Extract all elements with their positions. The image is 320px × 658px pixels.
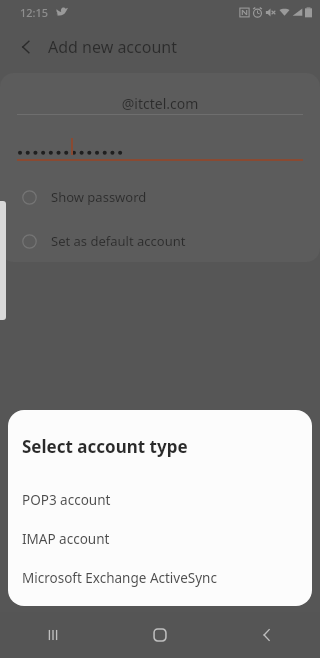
staticText: @itctel.com: [0, 94, 320, 113]
button[interactable]: POP3 account: [8, 480, 312, 519]
staticText: Set as default account: [51, 232, 186, 250]
button[interactable]: Home: [106, 612, 213, 658]
button[interactable]: Microsoft Exchange ActiveSync: [8, 558, 312, 597]
staticText: Select account type: [22, 435, 188, 458]
staticText: POP3 account: [22, 491, 111, 509]
button[interactable]: Set as default account: [0, 224, 320, 258]
staticText: Microsoft Exchange ActiveSync: [22, 569, 217, 587]
button[interactable]: IMAP account: [8, 519, 312, 558]
button[interactable]: Show password: [0, 180, 320, 214]
button[interactable]: Back: [8, 29, 44, 65]
staticText: 12:15: [20, 5, 49, 20]
staticText: Add new account: [48, 36, 177, 58]
button[interactable]: Back: [213, 612, 320, 658]
staticText: IMAP account: [22, 530, 110, 548]
staticText: Show password: [51, 188, 147, 206]
button[interactable]: Recent apps: [0, 612, 106, 658]
